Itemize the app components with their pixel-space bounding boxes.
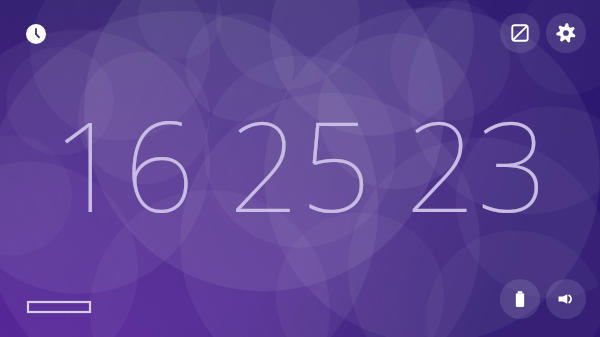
button[interactable]: Settings — [546, 13, 586, 53]
staticText: 16 25 23 — [52, 79, 549, 248]
button[interactable]: Clock — [24, 22, 48, 46]
button[interactable]: Battery — [500, 279, 540, 319]
button[interactable]: Progress — [28, 302, 90, 312]
button[interactable]: Volume — [546, 279, 586, 319]
button[interactable]: Disable screenshot — [500, 13, 540, 53]
